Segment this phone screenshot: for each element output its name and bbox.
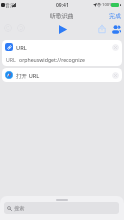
staticText: 09:41 [56, 2, 69, 9]
button[interactable]: 完成 [105, 11, 124, 20]
button[interactable]: Remove action [112, 44, 119, 51]
button[interactable]: Collaborate [110, 23, 122, 35]
button[interactable]: 打开 URL [2, 68, 122, 82]
staticText: 听歌识曲 [50, 12, 74, 19]
staticText: 打开 URL [16, 72, 40, 80]
staticText: 100% [102, 2, 113, 8]
button[interactable]: URL [2, 40, 122, 66]
staticText: URL [16, 44, 27, 52]
staticText: 完成 [109, 12, 121, 19]
button[interactable]: Play [56, 23, 68, 35]
staticText: 音乐 [5, 2, 15, 8]
staticText: URL [6, 56, 16, 63]
staticText: 搜索 [14, 205, 25, 212]
button[interactable]: Share [96, 23, 108, 35]
staticText: orpheuswidget://recognize [19, 56, 85, 63]
button[interactable]: Remove action [112, 72, 119, 79]
button[interactable]: 搜索 [4, 202, 119, 214]
